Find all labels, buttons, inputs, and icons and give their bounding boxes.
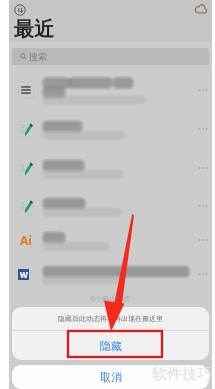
staticText: W <box>20 269 28 280</box>
button[interactable]: More options <box>194 255 212 293</box>
button[interactable]: More options <box>194 149 212 187</box>
button[interactable]: More options <box>9 187 212 225</box>
button[interactable]: 隐藏 <box>12 331 209 360</box>
staticText: 最近 <box>14 17 54 42</box>
button[interactable]: 搜索 <box>12 48 209 65</box>
button[interactable]: More options <box>194 221 212 259</box>
button[interactable]: W <box>9 255 212 293</box>
button[interactable]: More options <box>194 71 212 109</box>
button[interactable]: 取消 <box>12 365 209 389</box>
button[interactable]: More options <box>194 187 212 225</box>
staticText: 取消 <box>100 370 122 384</box>
staticText: 搜索 <box>29 51 47 62</box>
button[interactable]: More options <box>9 149 212 187</box>
button[interactable]: More options <box>9 110 212 148</box>
button[interactable]: Ai <box>9 221 212 259</box>
button[interactable]: More options <box>9 71 212 109</box>
staticText: 隐藏后此动态将不再出现在最近里 <box>58 314 163 323</box>
button[interactable]: Cloud <box>192 1 208 17</box>
button[interactable]: Downloads <box>12 2 28 18</box>
staticText: 6个最近动态 <box>91 294 131 304</box>
staticText: Ai <box>20 232 32 248</box>
staticText: 软件技巧 <box>152 365 212 384</box>
button[interactable]: More options <box>194 110 212 148</box>
staticText: 隐藏 <box>100 339 122 353</box>
